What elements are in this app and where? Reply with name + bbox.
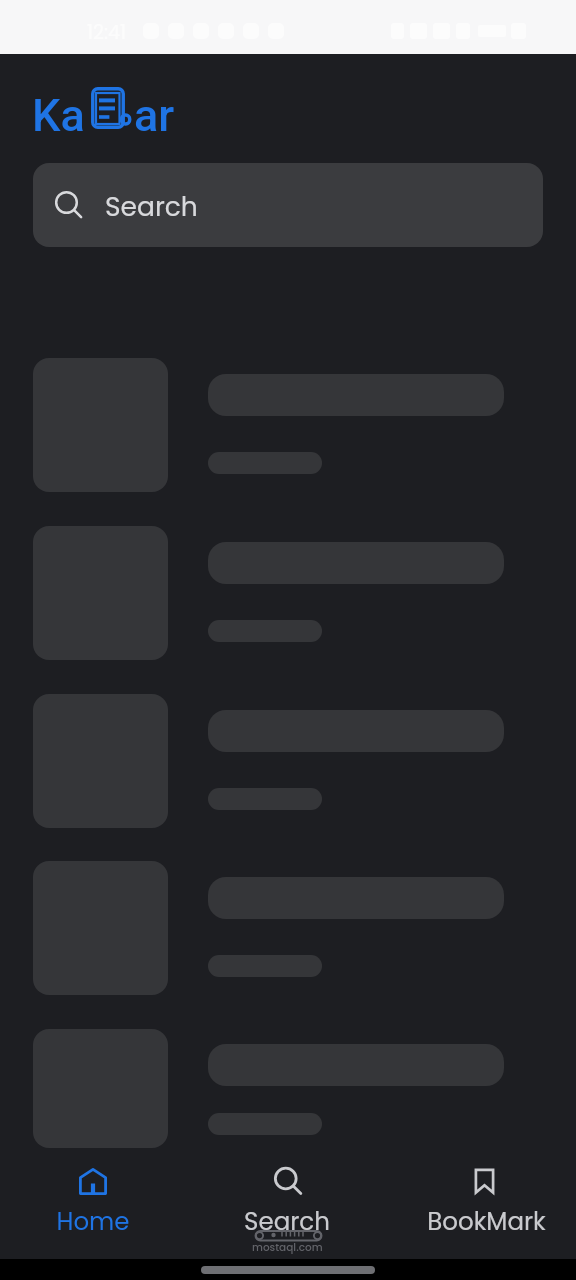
button[interactable] — [33, 358, 543, 492]
staticText: mostaql.com — [252, 1240, 323, 1255]
button[interactable] — [33, 1029, 543, 1148]
staticText: Home — [56, 1204, 130, 1238]
button[interactable] — [33, 861, 543, 995]
staticText: BookMark — [427, 1204, 546, 1238]
staticText: Ka — [32, 89, 85, 142]
button[interactable]: BookMark — [406, 1160, 566, 1244]
button[interactable]: Home — [13, 1160, 173, 1244]
staticText: Search — [244, 1204, 330, 1238]
button[interactable] — [33, 694, 543, 828]
button[interactable]: Search — [207, 1160, 367, 1244]
button[interactable]: Search — [33, 163, 543, 247]
staticText: Search — [105, 188, 198, 225]
button[interactable] — [33, 526, 543, 660]
staticText: ar — [134, 89, 175, 142]
